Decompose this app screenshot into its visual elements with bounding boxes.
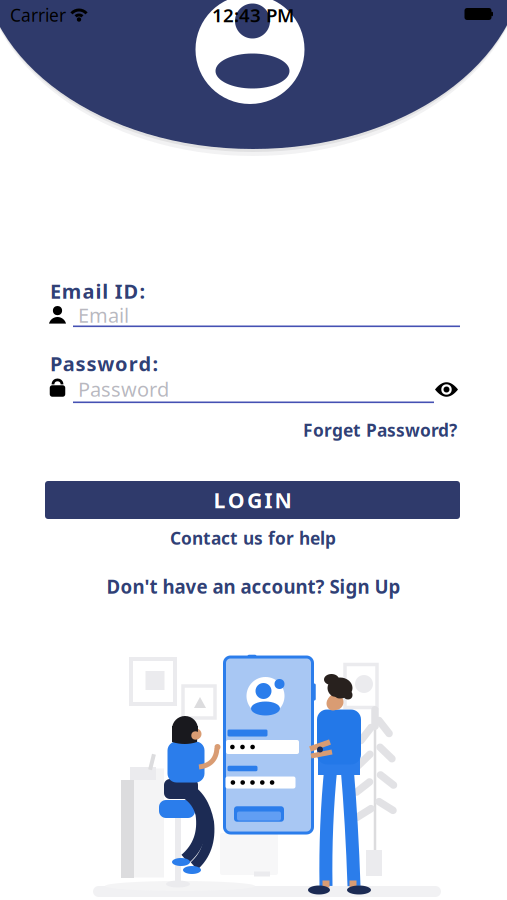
button[interactable]: Don't have an account? Sign Up — [106, 574, 400, 599]
staticText: s — [76, 350, 86, 377]
staticText: Email — [78, 302, 129, 328]
staticText: I — [115, 278, 123, 304]
staticText: w — [97, 350, 114, 377]
staticText: m — [62, 278, 82, 304]
staticText: Password — [78, 376, 169, 402]
staticText: Carrier — [10, 3, 66, 26]
staticText: D — [124, 278, 139, 304]
staticText: : — [139, 278, 145, 304]
staticText: l — [102, 278, 108, 304]
staticText: o — [115, 350, 128, 377]
button[interactable]: Forget Password? — [303, 418, 457, 441]
staticText: I — [264, 486, 272, 514]
staticText: a — [83, 278, 95, 304]
staticText: N — [274, 486, 291, 514]
staticText: Don't have an account? Sign Up — [106, 574, 400, 599]
button[interactable]: Email — [40, 298, 467, 334]
staticText: Forget Password? — [303, 418, 457, 441]
staticText: L — [214, 486, 226, 514]
staticText: E — [50, 278, 61, 304]
staticText: 12:43 PM — [212, 3, 294, 27]
staticText: d — [139, 350, 152, 377]
staticText: i — [95, 278, 101, 304]
button[interactable]: Password — [40, 371, 467, 407]
staticText: Contact us for help — [170, 526, 336, 549]
staticText: O — [228, 486, 245, 514]
staticText: P — [50, 350, 62, 377]
staticText: a — [63, 350, 75, 377]
staticText: G — [247, 486, 262, 514]
button[interactable]: Show password — [432, 377, 461, 402]
staticText: r — [129, 350, 138, 377]
staticText: s — [86, 350, 96, 377]
button[interactable]: Contact us for help — [170, 526, 336, 549]
staticText: : — [152, 350, 158, 377]
button[interactable]: L — [45, 481, 460, 519]
